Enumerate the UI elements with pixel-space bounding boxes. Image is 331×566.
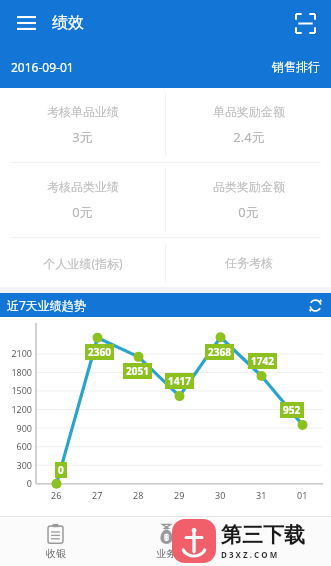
staticText: 900 xyxy=(16,422,32,434)
staticText: 27 xyxy=(92,489,103,501)
staticText: 300 xyxy=(16,459,32,471)
button[interactable]: 考核单品业绩 xyxy=(0,88,165,162)
staticText: 单品奖励金额 xyxy=(213,104,285,119)
staticText: 1742 xyxy=(251,354,274,368)
staticText: 2051 xyxy=(126,364,149,378)
staticText: 2368 xyxy=(208,345,231,359)
staticText: 952 xyxy=(283,403,301,417)
staticText: 1417 xyxy=(168,374,191,388)
staticText: 任务考核 xyxy=(225,255,273,270)
button[interactable]: 任务考核 xyxy=(166,238,331,287)
staticText: 0 xyxy=(58,463,64,477)
staticText: 30 xyxy=(215,489,226,501)
button[interactable]: 品类奖励金额 xyxy=(166,163,331,237)
staticText: 业务 xyxy=(156,547,176,560)
staticText: 01 xyxy=(297,489,308,501)
staticText: 考核品类业绩 xyxy=(47,179,119,194)
staticText: 0元 xyxy=(72,203,93,221)
staticText: 品类奖励金额 xyxy=(213,179,285,194)
button[interactable]: 考核品类业绩 xyxy=(0,163,165,237)
staticText: 28 xyxy=(133,489,144,501)
staticText: 2360 xyxy=(88,345,111,359)
staticText: 0元 xyxy=(238,203,259,221)
button[interactable]: Menu xyxy=(8,5,44,41)
staticText: 600 xyxy=(16,440,32,452)
button[interactable]: 单品奖励金额 xyxy=(166,88,331,162)
staticText: 个人业绩(指标) xyxy=(43,255,123,271)
staticText: D 3 X Z . C O M xyxy=(221,549,278,560)
staticText: 1200 xyxy=(11,403,32,415)
staticText: 2100 xyxy=(11,347,32,359)
staticText: 26 xyxy=(51,489,62,501)
staticText: 第三下载 xyxy=(221,522,305,548)
staticText: 1500 xyxy=(11,384,32,396)
staticText: 绩效 xyxy=(52,13,84,33)
button[interactable]: 业务 xyxy=(111,516,221,566)
button[interactable]: 销售排行 xyxy=(266,53,331,80)
button[interactable]: Scan xyxy=(288,6,322,40)
staticText: 2016-09-01 xyxy=(11,59,74,75)
staticText: 销售排行 xyxy=(272,59,320,74)
staticText: 近7天业绩趋势 xyxy=(7,297,86,313)
staticText: 2.4元 xyxy=(233,128,265,146)
button[interactable]: 2016-09-01 xyxy=(0,53,80,81)
staticText: 考核单品业绩 xyxy=(47,104,119,119)
button[interactable]: 收银 xyxy=(0,516,111,566)
staticText: 29 xyxy=(174,489,185,501)
staticText: 收银 xyxy=(46,547,66,560)
staticText: 0 xyxy=(26,477,32,489)
button[interactable]: 个人业绩(指标) xyxy=(0,238,165,287)
staticText: 1800 xyxy=(11,366,32,378)
staticText: 3元 xyxy=(72,128,93,146)
button[interactable]: Refresh xyxy=(303,293,327,317)
button[interactable] xyxy=(221,516,331,566)
staticText: 31 xyxy=(256,489,267,501)
